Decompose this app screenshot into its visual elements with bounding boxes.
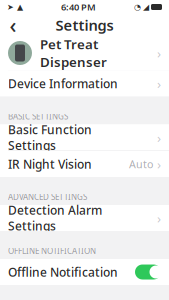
button[interactable]: Back <box>0 14 26 36</box>
staticText: ▲ <box>17 2 23 12</box>
staticText: › <box>157 75 161 92</box>
staticText: › <box>157 129 161 146</box>
staticText: Offline Notification <box>8 264 118 280</box>
button[interactable]: Pet Treat Dispenser <box>0 36 169 70</box>
staticText: Basic Function Settings <box>8 122 92 153</box>
staticText: ➤ <box>7 2 14 12</box>
staticText: BASIC SETTINGS <box>8 111 68 122</box>
staticText: OFFLINE NOTIFICATION <box>8 246 96 256</box>
button[interactable]: IR Night Vision <box>0 151 169 177</box>
staticText: Pet Treat Dispenser <box>40 35 107 71</box>
button[interactable]: Detection Alarm Settings <box>0 205 169 231</box>
button[interactable]: Basic Function Settings <box>0 124 169 150</box>
button[interactable]: Offline Notification <box>0 259 169 285</box>
staticText: Device Information <box>8 75 118 91</box>
staticText: Settings <box>55 15 113 35</box>
staticText: › <box>157 44 161 62</box>
staticText: Auto <box>129 157 153 171</box>
staticText: 6:40 PM <box>61 1 96 13</box>
staticText: ◢ <box>143 2 149 12</box>
staticText: ‹ <box>9 11 16 39</box>
staticText: ◔ <box>134 2 141 12</box>
staticText: › <box>157 155 161 173</box>
staticText: ADVANCED SETTINGS <box>8 192 87 202</box>
staticText: IR Night Vision <box>8 156 92 172</box>
staticText: Detection Alarm Settings <box>8 202 102 234</box>
staticText: › <box>157 209 161 227</box>
button[interactable]: Device Information <box>0 70 169 96</box>
